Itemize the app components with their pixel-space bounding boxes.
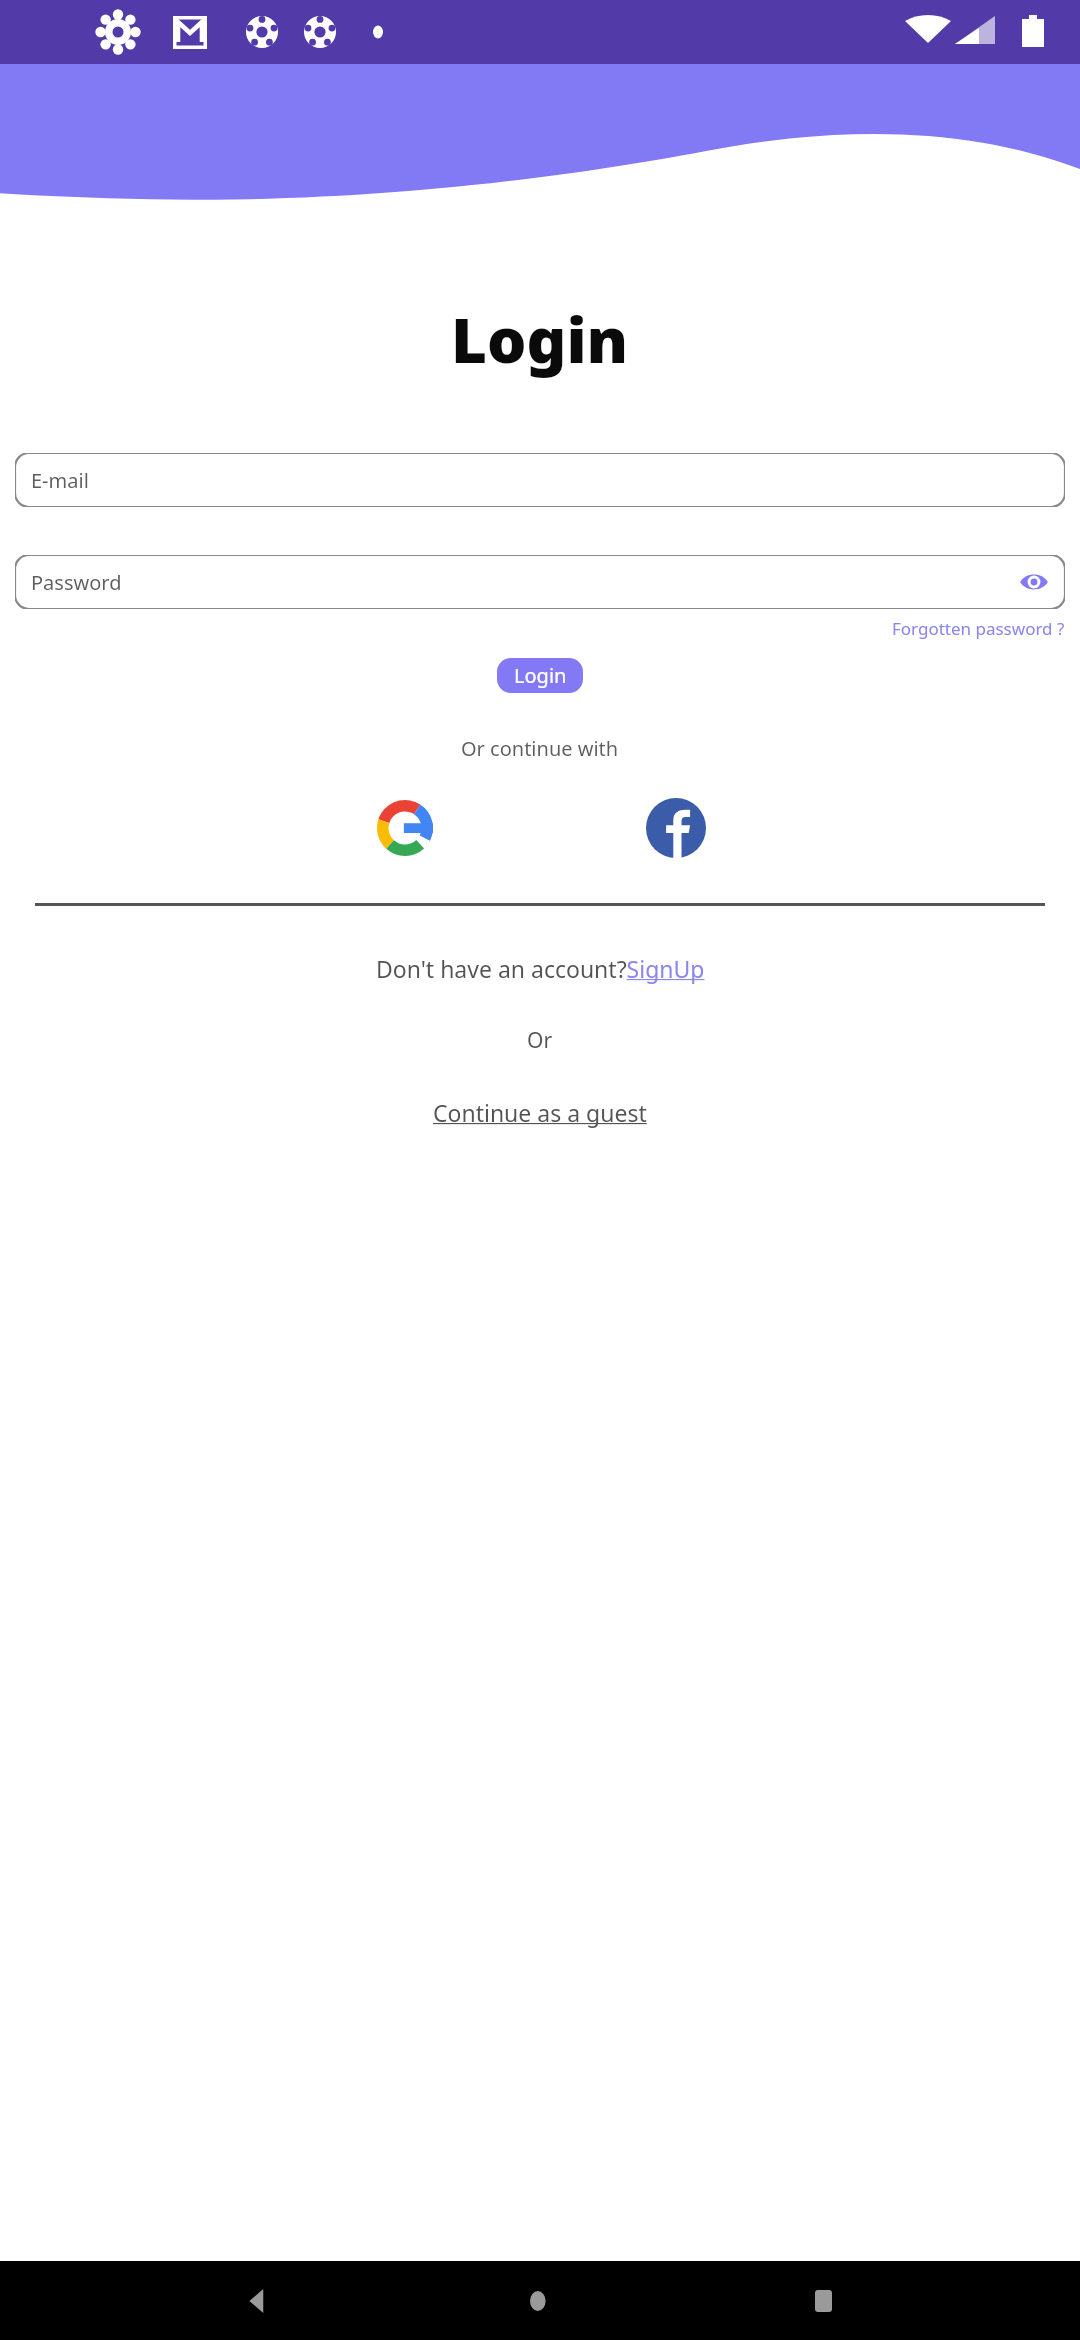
button[interactable]: Sign in with Google (372, 795, 438, 861)
button[interactable]: Login (497, 658, 583, 693)
staticText: Login (451, 297, 629, 381)
button[interactable]: Back (233, 2276, 283, 2326)
button[interactable]: Password (15, 555, 1065, 609)
button[interactable]: Home (515, 2276, 565, 2326)
staticText: Or (527, 1026, 553, 1055)
staticText: Login (514, 662, 567, 689)
button[interactable]: E-mail (15, 453, 1065, 507)
staticText: E-mail (31, 467, 89, 494)
button[interactable]: Don't have an account?SignUp (376, 953, 705, 984)
button[interactable]: Recent apps (798, 2276, 848, 2326)
staticText: Or continue with (461, 735, 619, 762)
button[interactable]: Sign in with Facebook (643, 795, 709, 861)
staticText: Password (31, 569, 122, 596)
staticText: Forgotten password ? (892, 617, 1065, 640)
button[interactable]: Continue as a guest (433, 1097, 647, 1128)
button[interactable]: Show password (1017, 565, 1051, 599)
button[interactable]: Forgotten password ? (892, 617, 1065, 640)
staticText: Don't have an account?SignUp (376, 953, 705, 984)
staticText: Continue as a guest (433, 1097, 647, 1128)
